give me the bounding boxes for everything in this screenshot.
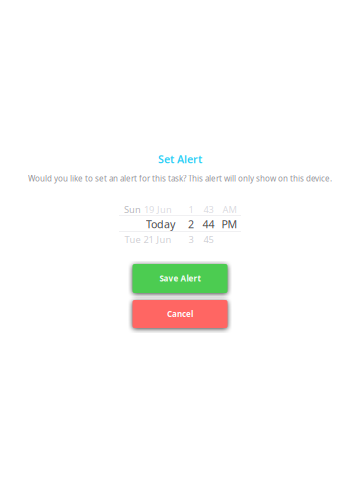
staticText: 19 <box>144 203 154 216</box>
staticText: 44 <box>203 217 215 231</box>
staticText: AM <box>222 203 236 216</box>
staticText: Today <box>146 217 175 231</box>
staticText: Cancel <box>167 309 193 319</box>
staticText: 21 <box>143 233 153 246</box>
staticText: 3 <box>188 233 193 246</box>
staticText: Set Alert <box>158 152 202 166</box>
staticText: PM <box>221 217 237 231</box>
staticText: Jun <box>156 233 171 246</box>
button[interactable]: Cancel <box>132 300 227 328</box>
staticText: 2 <box>188 217 194 231</box>
staticText: 1 <box>188 203 193 216</box>
button[interactable]: Save Alert <box>132 264 227 293</box>
staticText: Save Alert <box>159 273 200 284</box>
staticText: Sun <box>124 203 141 216</box>
staticText: 43 <box>204 203 214 216</box>
staticText: Would you like to set an alert for this … <box>28 173 332 184</box>
staticText: Jun <box>157 203 172 216</box>
staticText: Tue <box>124 233 140 246</box>
staticText: 45 <box>204 233 214 246</box>
